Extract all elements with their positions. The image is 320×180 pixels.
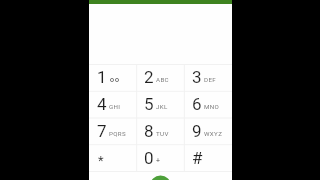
- staticText: 0: [144, 148, 154, 168]
- staticText: *: [98, 153, 104, 168]
- staticText: +: [156, 157, 161, 165]
- button[interactable]: Call: [89, 172, 232, 180]
- staticText: #: [192, 148, 203, 168]
- staticText: 7: [97, 121, 107, 141]
- button[interactable]: 1: [89, 65, 136, 91]
- staticText: 4: [97, 94, 107, 114]
- button[interactable]: 3: [184, 65, 232, 91]
- button[interactable]: 6: [184, 92, 232, 118]
- button[interactable]: *: [89, 146, 136, 172]
- button[interactable]: 4: [89, 92, 136, 118]
- staticText: 8: [144, 121, 154, 141]
- staticText: 1: [97, 67, 107, 87]
- staticText: WXYZ: [204, 130, 223, 137]
- staticText: 2: [144, 67, 154, 87]
- staticText: 6: [192, 94, 202, 114]
- staticText: PQRS: [109, 130, 127, 137]
- button[interactable]: 5: [136, 92, 184, 118]
- button[interactable]: 7: [89, 119, 136, 145]
- staticText: 3: [192, 67, 202, 87]
- staticText: 9: [192, 121, 202, 141]
- button[interactable]: #: [184, 146, 232, 172]
- staticText: GHI: [109, 103, 121, 110]
- button[interactable]: 0: [136, 146, 184, 172]
- staticText: TUV: [156, 130, 169, 137]
- staticText: MNO: [204, 103, 220, 110]
- staticText: 5: [144, 94, 154, 114]
- staticText: ABC: [156, 76, 169, 83]
- button[interactable]: 8: [136, 119, 184, 145]
- button[interactable]: 2: [136, 65, 184, 91]
- button[interactable]: 9: [184, 119, 232, 145]
- staticText: DEF: [204, 76, 217, 83]
- staticText: JKL: [156, 103, 168, 110]
